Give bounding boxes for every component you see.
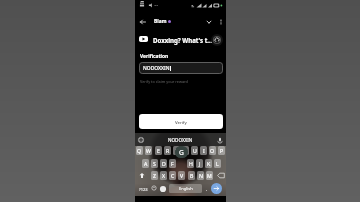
staticText: T xyxy=(175,147,178,154)
staticText: L xyxy=(216,160,219,167)
staticText: NODOXXIN xyxy=(168,137,193,143)
button[interactable]: N xyxy=(197,171,204,180)
staticText: . xyxy=(206,186,208,193)
button[interactable]: O xyxy=(209,146,216,155)
button[interactable]: H xyxy=(187,159,194,168)
button[interactable]: J xyxy=(196,159,203,168)
button[interactable]: K xyxy=(205,159,212,168)
staticText: J xyxy=(199,160,201,167)
staticText: B xyxy=(190,172,194,179)
button[interactable]: Enter xyxy=(211,183,222,194)
staticText: Verification xyxy=(140,53,169,60)
button[interactable]: E xyxy=(155,146,162,155)
button[interactable]: U xyxy=(191,146,198,155)
staticText: H xyxy=(189,160,193,167)
staticText: X xyxy=(162,172,166,179)
staticText: Verify to claim your reward xyxy=(140,79,188,84)
staticText: Y xyxy=(184,147,187,154)
button[interactable]: Q xyxy=(136,146,143,155)
button[interactable]: Expand xyxy=(203,16,215,28)
staticText: I xyxy=(203,147,205,154)
button[interactable]: Switch language xyxy=(158,184,168,194)
button[interactable]: L xyxy=(214,159,221,168)
staticText: Q xyxy=(137,147,142,154)
staticText: O xyxy=(210,147,215,154)
staticText: Doxxing? What's t… xyxy=(153,36,213,44)
button[interactable]: Verify xyxy=(139,114,223,129)
button[interactable]: D xyxy=(160,159,167,168)
staticText: M xyxy=(207,172,212,179)
button[interactable]: Backspace xyxy=(215,171,226,180)
staticText: U xyxy=(193,147,197,154)
button[interactable]: NODOXXIN xyxy=(139,62,223,74)
staticText: F xyxy=(171,160,174,167)
staticText: W xyxy=(146,147,151,154)
staticText: ?123 xyxy=(139,187,148,192)
button[interactable]: S xyxy=(151,159,158,168)
button[interactable]: Emoji xyxy=(137,136,145,144)
staticText: N xyxy=(199,172,203,179)
staticText: Z xyxy=(153,172,156,179)
staticText: Verify xyxy=(175,119,187,125)
button[interactable]: Back xyxy=(137,16,149,28)
button[interactable]: A xyxy=(142,159,149,168)
staticText: E xyxy=(157,147,160,154)
staticText: R xyxy=(166,147,170,154)
button[interactable]: I xyxy=(200,146,207,155)
button[interactable]: B xyxy=(188,171,195,180)
button[interactable]: Z xyxy=(151,171,158,180)
staticText: K xyxy=(207,160,211,167)
staticText: English xyxy=(179,186,193,191)
button[interactable]: X xyxy=(160,171,167,180)
button[interactable]: M xyxy=(206,171,213,180)
button[interactable]: Y xyxy=(182,146,189,155)
staticText: V xyxy=(180,172,184,179)
staticText: NODOXXIN xyxy=(143,65,170,72)
button[interactable]: T xyxy=(173,146,180,155)
button[interactable]: C xyxy=(169,171,176,180)
button[interactable]: More options xyxy=(215,16,227,28)
button[interactable]: F xyxy=(169,159,176,168)
staticText: G xyxy=(179,148,184,157)
staticText: A xyxy=(144,160,148,167)
staticText: C xyxy=(171,172,175,179)
staticText: P xyxy=(220,147,224,154)
staticText: D xyxy=(162,160,166,167)
button[interactable]: Emoji keyboard xyxy=(150,184,158,192)
button[interactable]: V xyxy=(178,171,185,180)
button[interactable]: Replay xyxy=(211,34,223,46)
button[interactable]: W xyxy=(145,146,152,155)
button[interactable]: Shift xyxy=(136,171,148,180)
button[interactable]: English xyxy=(169,184,202,193)
staticText: Blam xyxy=(154,18,167,25)
button[interactable]: Voice input xyxy=(216,136,224,144)
button[interactable]: P xyxy=(218,146,225,155)
button[interactable]: R xyxy=(164,146,171,155)
staticText: S xyxy=(153,160,156,167)
